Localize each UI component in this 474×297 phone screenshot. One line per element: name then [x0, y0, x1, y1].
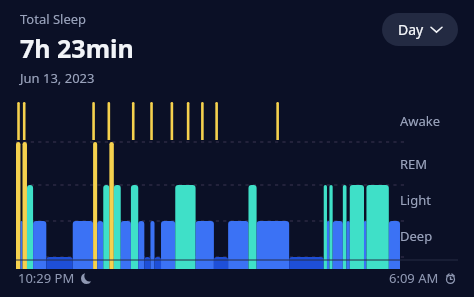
staticText: Total Sleep [20, 10, 87, 28]
staticText: Jun 13, 2023 [20, 69, 95, 87]
staticText: Deep [400, 227, 458, 245]
button[interactable]: Day [382, 13, 458, 46]
staticText: REM [400, 155, 458, 173]
other: Bedtime [81, 273, 92, 284]
staticText: 6:09 AM [389, 269, 439, 287]
staticText: Day [398, 20, 424, 39]
staticText: 7h 23min [20, 31, 134, 65]
staticText: 10:29 PM [18, 269, 75, 287]
other: Wake time [445, 273, 456, 284]
staticText: Light [400, 191, 458, 209]
staticText: Awake [400, 112, 458, 130]
